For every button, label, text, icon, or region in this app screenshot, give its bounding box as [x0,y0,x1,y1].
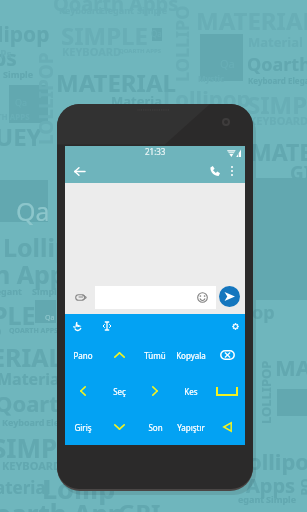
button[interactable]: Backspace [209,337,245,373]
staticText: MATERIAL [56,66,176,99]
staticText: Giriş [74,422,92,433]
staticText: SIMPL [247,88,307,121]
staticText: MAT [275,352,307,382]
staticText: Simple [266,493,297,505]
staticText: Seç [113,386,126,397]
button[interactable]: Yapıştır [173,409,209,445]
staticText: Qa [16,194,50,228]
staticText: D [0,325,2,339]
staticText: Yapıştır [177,422,205,433]
staticText: Simple [32,285,63,297]
staticText: Materia [111,92,162,110]
staticText: Elegant [288,75,307,86]
button[interactable]: Attach [70,286,92,308]
staticText: 21:33 [145,146,166,157]
staticText: Apps [246,472,296,499]
staticText: Lollip [42,470,116,507]
staticText: TH APPS [0,111,30,122]
staticText: Keyboard [59,4,102,16]
button[interactable]: Kes [173,373,209,409]
staticText: Qoarth Apps [53,0,179,17]
other: Space [216,387,238,396]
staticText: aterial [0,476,51,499]
staticText: op [252,300,275,325]
button[interactable]: Down [101,409,137,445]
staticText: ERIAL [0,340,63,374]
staticText: POP [296,471,307,495]
button[interactable]: Right [137,373,173,409]
staticText: oarth App [0,496,125,512]
other: Left [80,386,86,396]
button[interactable]: Call [206,162,224,180]
button[interactable]: Space [209,373,245,409]
staticText: UEY [0,120,42,153]
button[interactable]: Send [219,286,240,307]
button[interactable]: Left [65,373,101,409]
staticText: Material [248,33,303,51]
staticText: Tümü [144,350,166,361]
button[interactable]: Seç [101,373,137,409]
staticText: Qa [151,28,162,39]
staticText: KEYBOARD [249,113,307,128]
staticText: Kes [184,386,198,397]
staticText: KEYBOARD [2,458,62,473]
button[interactable]: Back [69,161,89,181]
staticText: Qa [45,313,55,323]
staticText: Qoarth [0,388,74,418]
staticText: Elegant [100,4,134,16]
button[interactable]: Pano [65,337,101,373]
button[interactable]: Cursor control [69,318,85,334]
button[interactable]: Giriş [65,409,101,445]
button[interactable]: Kopyala [173,337,209,373]
staticText: Mystic [198,73,225,84]
staticText: GI [290,160,307,186]
button[interactable]: More options [224,163,240,179]
staticText: SIMPLE [61,19,148,52]
staticText: Keyboard [2,416,45,428]
staticText: llipop [0,20,50,49]
other: Right [152,386,158,396]
staticText: ollipop [248,446,307,476]
staticText: GRI [118,496,161,512]
staticText: egant [238,493,265,505]
button[interactable]: Move cursor [99,318,115,334]
staticText: MATER [250,136,307,167]
other: Backspace [220,350,235,360]
staticText: PLE [0,298,36,332]
staticText: Pano [73,350,93,361]
button[interactable]: Son [137,409,173,445]
button[interactable]: Up [101,337,137,373]
staticText: MATERIAL [196,4,307,37]
staticText: SIMPL [0,430,72,465]
button[interactable]: Tümü [137,337,173,373]
staticText: Keyboard [248,75,286,86]
staticText: Simple [137,4,168,16]
staticText: Kopyala [176,350,206,361]
staticText: Material [0,368,65,390]
staticText: LOLLIPO [170,5,192,82]
staticText: Lollip [3,230,71,264]
staticText: n Apps [0,257,79,291]
other: Enter [223,422,232,432]
staticText: Qoarth A [247,52,307,77]
staticText: ps [0,44,17,73]
other: Down [114,424,125,430]
other: Up [114,352,125,358]
staticText: Son [148,422,163,433]
button[interactable]: Enter [209,409,245,445]
button[interactable]: Settings [227,318,243,334]
staticText: QOARTH APPS [119,47,161,55]
staticText: LOLLIPOP [33,52,56,145]
staticText: QOARTH APPS [9,326,58,336]
staticText: PPs [0,47,12,61]
staticText: KEYBOARD [62,44,122,59]
staticText: LOLLIPOP [257,360,273,424]
staticText: Lollipop [163,83,251,113]
staticText: Simple [3,68,34,80]
staticText: Ele [46,416,60,428]
staticText: legant [0,285,22,297]
